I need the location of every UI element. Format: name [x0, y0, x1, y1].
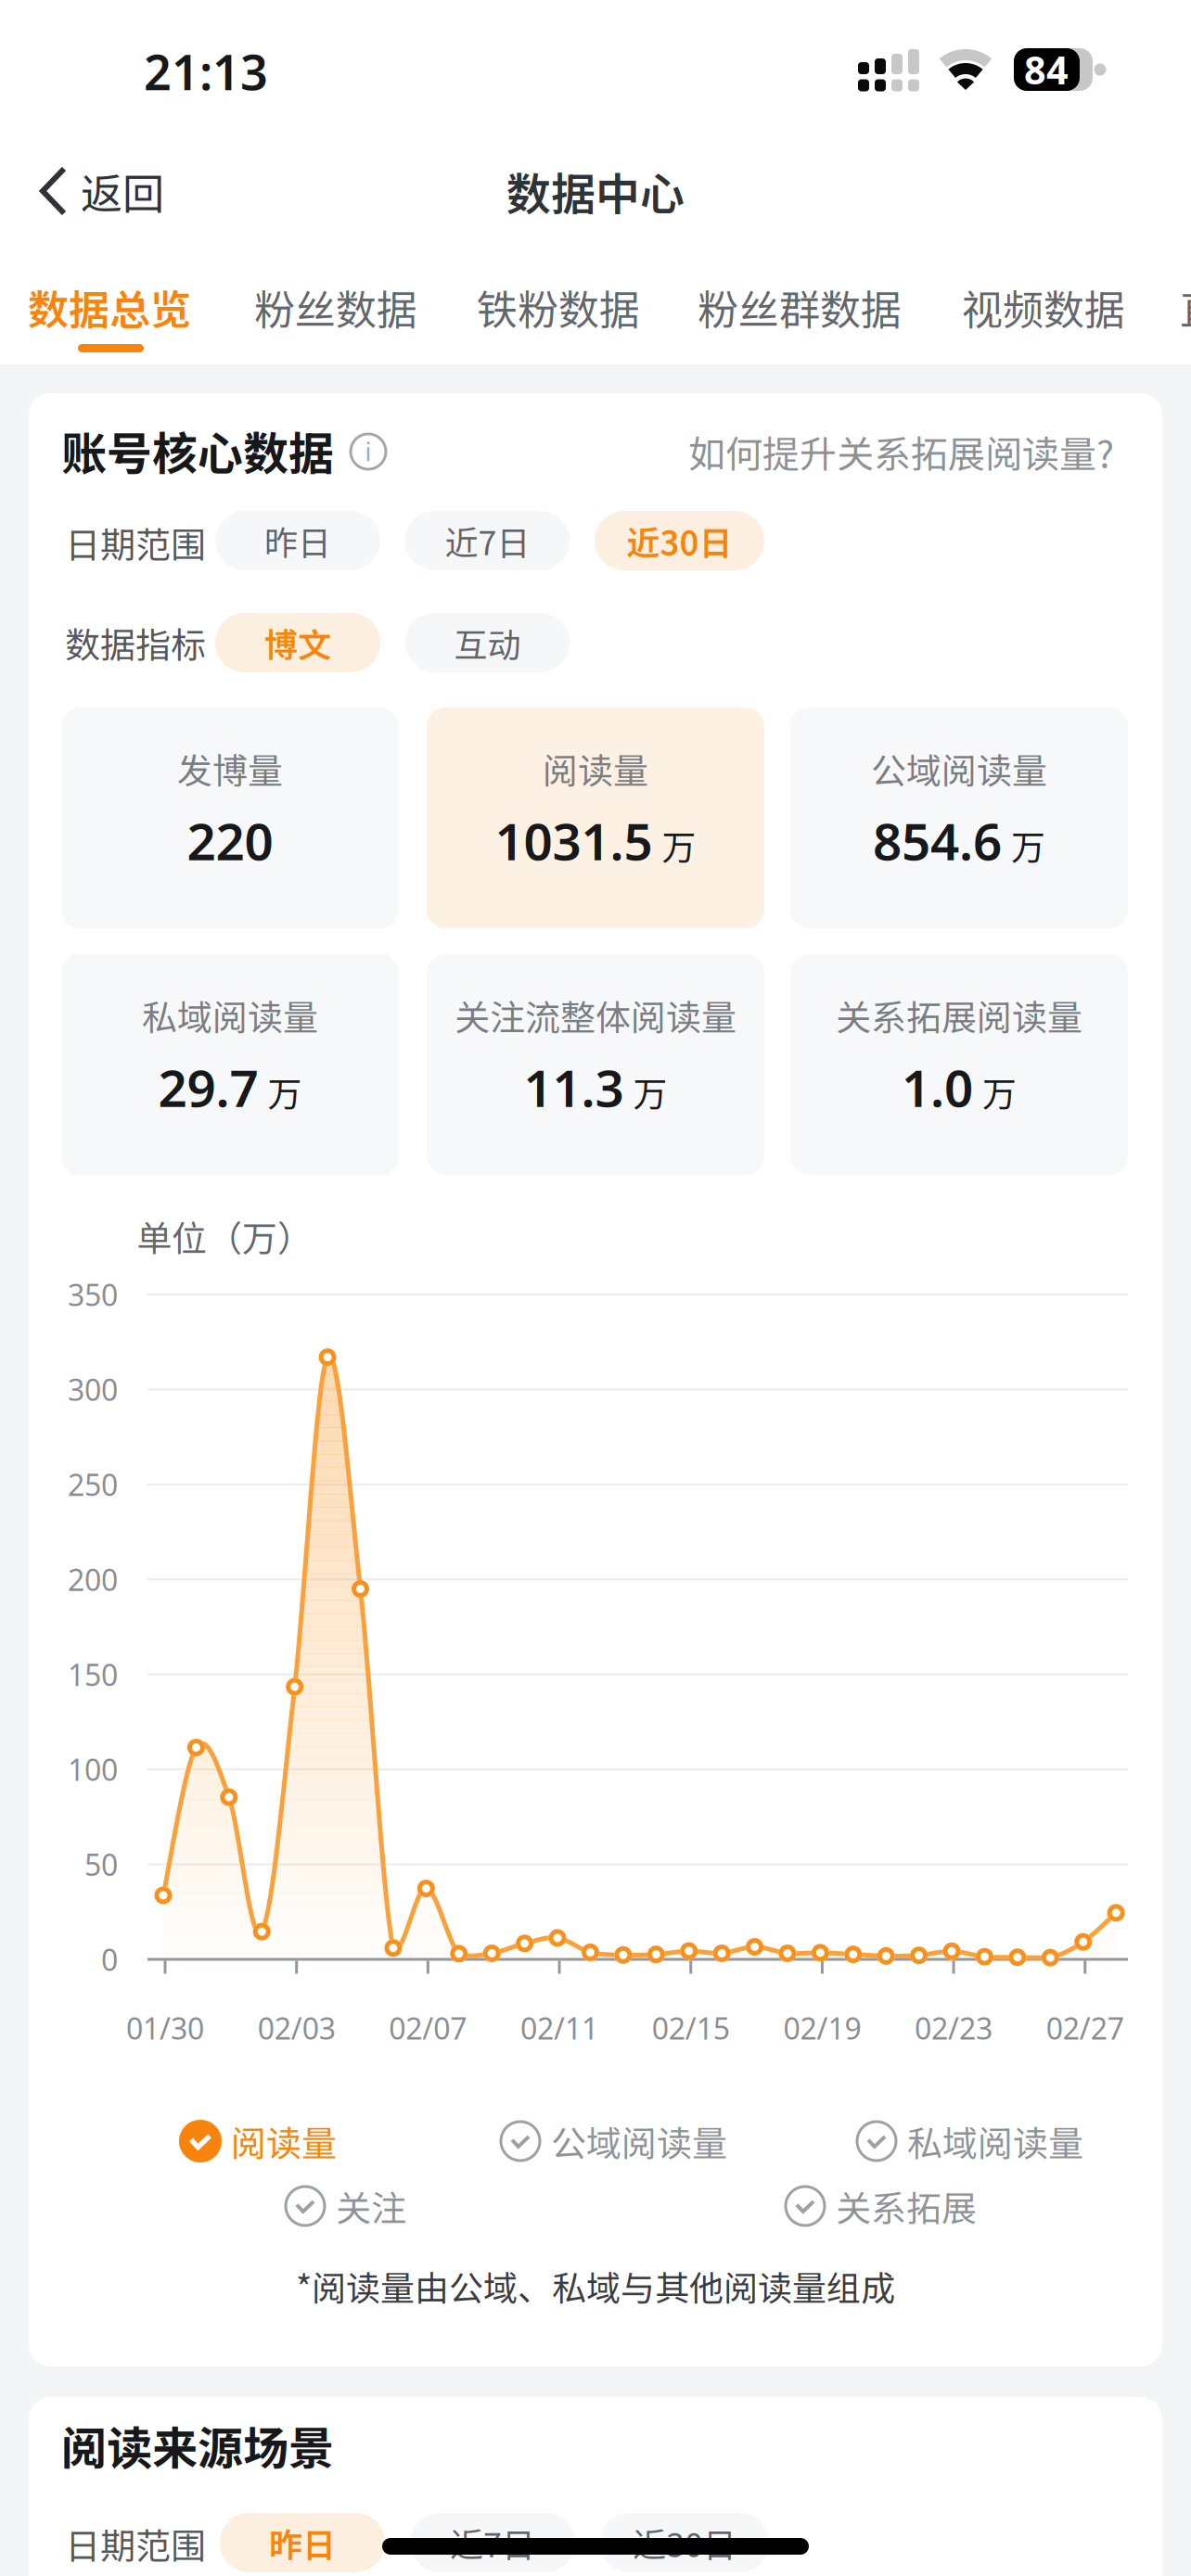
button[interactable]: 互动: [405, 613, 570, 672]
button[interactable]: 关注: [284, 2181, 406, 2232]
button[interactable]: 近7日: [410, 2513, 575, 2572]
button[interactable]: 关系拓展: [784, 2181, 977, 2232]
button[interactable]: 如何提升关系拓展阅读量?: [557, 425, 1114, 478]
staticText: 250: [68, 1465, 118, 1504]
staticText: 关注: [336, 2181, 406, 2232]
staticText: 350: [68, 1275, 118, 1314]
button[interactable]: 说明: [351, 434, 386, 469]
staticText: 日期范围: [65, 517, 206, 568]
button[interactable]: 阅读量: [179, 2116, 337, 2167]
staticText: 29.7: [158, 1054, 258, 1121]
staticText: 1031.5: [495, 807, 653, 874]
staticText: 02/11: [520, 2008, 598, 2048]
staticText: 21:13: [144, 39, 268, 103]
staticText: *阅读量由公域、私域与其他阅读量组成: [296, 2261, 895, 2311]
button[interactable]: 昨日: [220, 2513, 385, 2572]
staticText: 50: [84, 1845, 118, 1884]
staticText: 02/27: [1046, 2008, 1124, 2048]
staticText: 关系拓展阅读量: [836, 990, 1082, 1041]
staticText: 02/23: [915, 2008, 993, 2048]
button[interactable]: 近30日: [600, 2513, 769, 2572]
staticText: 万: [982, 1067, 1017, 1116]
button[interactable]: 铁粉数据: [477, 277, 640, 336]
button[interactable]: 公域阅读量: [499, 2116, 727, 2167]
staticText: 日期范围: [65, 2518, 206, 2569]
staticText: 数据中心: [506, 159, 685, 223]
staticText: 300: [68, 1370, 118, 1409]
staticText: 昨日: [264, 516, 331, 565]
staticText: 万: [633, 1067, 667, 1116]
button[interactable]: 近30日: [595, 511, 764, 570]
staticText: 阅读量: [231, 2116, 337, 2167]
staticText: 阅读量: [543, 743, 648, 794]
button[interactable]: 博文: [215, 613, 380, 672]
staticText: 1.0: [902, 1054, 973, 1121]
staticText: 互动: [454, 618, 521, 667]
button[interactable]: 粉丝数据: [254, 277, 417, 336]
staticText: 公域阅读量: [551, 2116, 727, 2167]
staticText: 200: [68, 1560, 118, 1599]
staticText: 账号核心数据: [61, 418, 334, 484]
staticText: 私域阅读量: [907, 2116, 1083, 2167]
staticText: 220: [187, 807, 273, 874]
staticText: 昨日: [269, 2518, 336, 2567]
staticText: 如何提升关系拓展阅读量?: [688, 425, 1114, 478]
staticText: 粉丝群数据: [698, 277, 902, 336]
staticText: 02/03: [258, 2008, 336, 2048]
staticText: 视频数据: [962, 277, 1125, 336]
staticText: 关系拓展: [836, 2181, 977, 2232]
staticText: 近7日: [450, 2518, 535, 2567]
staticText: 返回: [81, 161, 164, 221]
staticText: 公域阅读量: [871, 743, 1047, 794]
staticText: 博文: [264, 618, 331, 667]
staticText: 万: [662, 820, 696, 870]
staticText: 11.3: [524, 1054, 624, 1121]
button[interactable]: 数据总览: [28, 277, 191, 336]
staticText: 近7日: [445, 516, 530, 565]
staticText: 单位（万）: [136, 1211, 313, 1262]
staticText: i: [365, 435, 371, 468]
staticText: 近30日: [627, 516, 732, 565]
staticText: 发博量: [177, 743, 283, 794]
button[interactable]: 近7日: [405, 511, 570, 570]
button[interactable]: 视频数据: [962, 277, 1125, 336]
button[interactable]: 私域阅读量: [855, 2116, 1083, 2167]
staticText: 854.6: [873, 807, 1002, 874]
staticText: 关注流整体阅读量: [455, 990, 736, 1041]
staticText: 阅读来源场景: [61, 2412, 334, 2478]
button[interactable]: 昨日: [215, 511, 380, 570]
staticText: 数据指标: [65, 617, 206, 668]
staticText: 150: [68, 1655, 118, 1694]
staticText: 铁粉数据: [477, 277, 640, 336]
staticText: 02/07: [389, 2008, 467, 2048]
staticText: 私域阅读量: [142, 990, 318, 1041]
staticText: 直播数据: [1180, 277, 1191, 336]
staticText: 02/19: [783, 2008, 861, 2048]
staticText: 万: [1011, 820, 1045, 870]
button[interactable]: 返回: [40, 161, 164, 221]
staticText: 0: [101, 1940, 118, 1979]
staticText: 数据总览: [28, 277, 191, 336]
button[interactable]: 直播数据: [1180, 277, 1191, 336]
staticText: 万: [268, 1067, 302, 1116]
staticText: 粉丝数据: [254, 277, 417, 336]
staticText: 84: [1024, 44, 1069, 95]
staticText: 100: [68, 1750, 118, 1789]
button[interactable]: 粉丝群数据: [698, 277, 902, 336]
staticText: 02/15: [652, 2008, 730, 2048]
staticText: 近30日: [633, 2518, 736, 2567]
staticText: 01/30: [126, 2008, 204, 2048]
